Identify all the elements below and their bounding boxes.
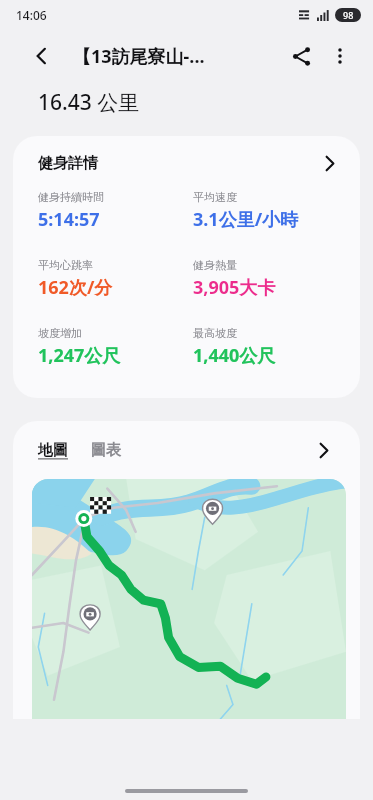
button[interactable]: Open map — [308, 435, 338, 465]
staticText: 圖表 — [91, 441, 121, 460]
staticText: 5:14:57 — [38, 207, 100, 232]
staticText: 地圖 — [38, 441, 68, 460]
staticText: 健身熱量 — [193, 258, 237, 272]
button[interactable]: Back — [24, 38, 60, 74]
button[interactable]: Share — [282, 37, 320, 75]
staticText: 平均速度 — [193, 190, 237, 204]
button[interactable]: More options — [321, 37, 359, 75]
staticText: 健身持續時間 — [38, 190, 104, 204]
button[interactable]: 圖表 — [91, 437, 121, 464]
staticText: 162次/分 — [38, 275, 113, 300]
staticText: 14:06 — [16, 7, 47, 23]
staticText: 98 — [343, 9, 354, 21]
staticText: 1,440公尺 — [193, 343, 276, 368]
button[interactable]: 健身詳情 — [13, 136, 360, 190]
staticText: 坡度增加 — [38, 326, 82, 340]
staticText: 健身詳情 — [38, 154, 98, 173]
button[interactable]: 地圖 — [38, 437, 68, 464]
staticText: 1,247公尺 — [38, 343, 121, 368]
staticText: 3,905大卡 — [193, 275, 276, 300]
staticText: 3.1公里/小時 — [193, 207, 299, 232]
staticText: 16.43 公里 — [38, 88, 140, 117]
staticText: 最高坡度 — [193, 326, 237, 340]
staticText: 平均心跳率 — [38, 258, 93, 272]
staticText: 【13訪尾寮山-... — [73, 44, 205, 69]
